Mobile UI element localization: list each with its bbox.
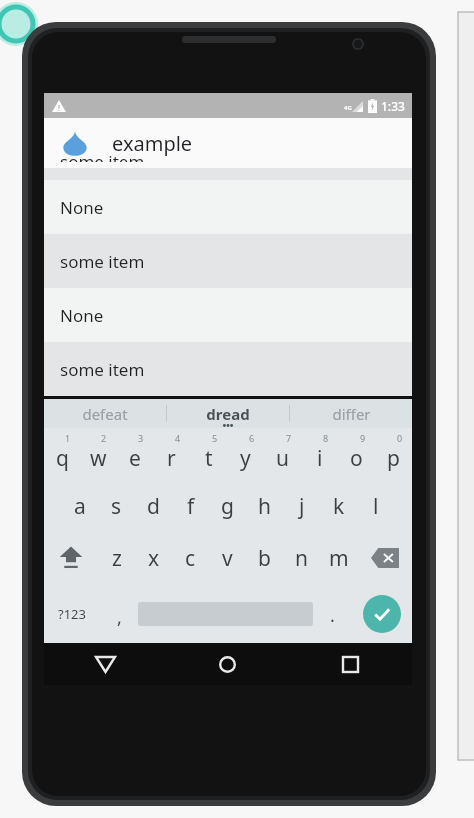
button[interactable]: k [320,480,357,532]
button[interactable]: some item [44,342,412,396]
button[interactable]: Space [138,584,313,643]
staticText: f [187,492,195,521]
staticText: 1 [65,432,71,444]
button[interactable]: Shift [44,532,98,584]
button[interactable]: None [44,180,412,234]
staticText: j [299,492,305,521]
button[interactable]: z [98,532,135,584]
staticText: , [117,605,122,630]
staticText: some item [60,358,145,381]
staticText: dread [206,404,250,424]
staticText: 5 [212,432,218,444]
staticText: r [167,444,176,473]
staticText: some item [60,250,145,273]
staticText: y [240,444,251,473]
staticText: differ [332,404,371,424]
staticText: ?123 [58,605,86,623]
staticText: c [185,544,196,573]
button[interactable]: d [135,480,172,532]
button[interactable]: None [44,288,412,342]
staticText: t [205,444,213,473]
staticText: n [295,544,308,573]
staticText: defeat [82,404,128,424]
button[interactable]: , [100,584,138,643]
button[interactable]: 9 [338,428,375,480]
button[interactable]: Backspace [357,532,412,584]
staticText: h [258,492,271,521]
staticText: q [56,444,69,473]
button[interactable]: s [98,480,135,532]
button[interactable]: f [172,480,209,532]
staticText: 2 [101,432,107,444]
staticText: o [350,444,363,473]
staticText: 9 [360,432,366,444]
staticText: . [330,603,335,628]
staticText: None [60,196,104,219]
staticText: k [333,492,345,521]
button[interactable]: dread [167,399,289,428]
staticText: 4 [175,432,181,444]
staticText: None [60,304,104,327]
button[interactable]: 4 [153,428,190,480]
button[interactable]: 7 [264,428,301,480]
staticText: example [112,130,193,157]
button[interactable]: b [246,532,283,584]
button[interactable]: 1 [44,428,80,480]
button[interactable]: ?123 [44,584,100,643]
button[interactable]: m [320,532,357,584]
staticText: 7 [286,432,292,444]
button[interactable]: a [61,480,98,532]
staticText: l [373,492,379,521]
button[interactable]: defeat [44,399,166,428]
button[interactable]: 3 [116,428,153,480]
staticText: g [221,492,234,521]
staticText: 1:33 [381,98,405,114]
staticText: 0 [397,432,403,444]
staticText: a [74,492,86,521]
staticText: 4G [344,104,352,112]
button[interactable]: g [209,480,246,532]
button[interactable]: Back [44,643,166,685]
button[interactable]: Recent apps [289,643,412,685]
button[interactable]: j [283,480,320,532]
staticText: some item [60,150,145,162]
button[interactable]: 2 [80,428,116,480]
button[interactable]: Enter [351,584,412,643]
staticText: 3 [138,432,144,444]
staticText: i [317,444,323,473]
button[interactable]: 0 [375,428,412,480]
staticText: z [112,544,122,573]
button[interactable]: x [135,532,172,584]
button[interactable]: h [246,480,283,532]
button[interactable]: n [283,532,320,584]
button[interactable]: 5 [190,428,227,480]
staticText: d [147,492,160,521]
staticText: w [90,444,107,473]
button[interactable]: . [313,584,351,643]
staticText: u [276,444,289,473]
button[interactable]: l [357,480,394,532]
staticText: b [258,544,271,573]
button[interactable]: 8 [301,428,338,480]
staticText: 6 [249,432,255,444]
button[interactable]: differ [290,399,412,428]
button[interactable]: c [172,532,209,584]
staticText: s [111,492,122,521]
button[interactable]: 6 [227,428,264,480]
button[interactable]: some item [44,234,412,288]
staticText: e [129,444,141,473]
button[interactable]: Home [166,643,289,685]
button[interactable]: example [44,118,412,168]
button[interactable]: v [209,532,246,584]
staticText: v [222,544,233,573]
staticText: m [329,544,349,573]
staticText: p [387,444,400,473]
staticText: x [148,544,160,573]
staticText: 8 [323,432,329,444]
